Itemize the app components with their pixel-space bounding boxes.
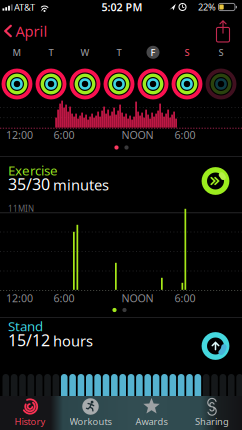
staticText: History (14, 415, 45, 428)
staticText: S (218, 46, 223, 58)
staticText: 12:00 (6, 291, 33, 305)
staticText: 11MIN (8, 203, 34, 214)
staticText: T (48, 46, 53, 58)
staticText: 15/12 (8, 329, 50, 351)
staticText: Stand (8, 317, 43, 335)
staticText: hours (53, 331, 93, 351)
staticText: AT&T (14, 1, 35, 13)
staticText: F (150, 46, 155, 58)
staticText: T (116, 46, 121, 58)
staticText: Exercise (8, 161, 58, 179)
staticText: 6:00 (174, 128, 195, 142)
staticText: Workouts (69, 415, 111, 428)
staticText: Sharing (195, 415, 229, 428)
staticText: 6:00 (53, 128, 74, 142)
staticText: S (184, 46, 189, 58)
staticText: NOON (121, 128, 153, 142)
staticText: M (12, 46, 21, 58)
staticText: April (15, 21, 47, 41)
staticText: 35/30 (8, 173, 50, 195)
staticText: 12:00 (6, 128, 33, 142)
staticText: 6:00 (53, 291, 74, 305)
staticText: 22% (198, 1, 216, 13)
staticText: minutes (53, 175, 109, 195)
staticText: W (80, 46, 89, 58)
staticText: NOON (121, 291, 153, 305)
staticText: Awards (135, 415, 167, 428)
staticText: 5:02 PM (101, 0, 142, 14)
staticText: 6:00 (174, 291, 195, 305)
